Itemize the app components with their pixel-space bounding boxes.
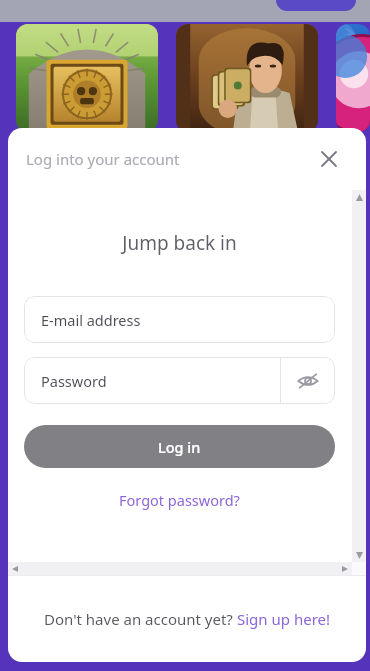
staticText: Jump back in bbox=[122, 230, 237, 256]
staticText: Log in bbox=[158, 437, 201, 457]
button[interactable]: Scroll down bbox=[352, 548, 366, 562]
button[interactable]: Password bbox=[24, 357, 280, 404]
staticText: Forgot password? bbox=[119, 490, 240, 510]
button[interactable]: Scroll left bbox=[8, 562, 22, 575]
staticText: Log into your account bbox=[26, 149, 180, 169]
staticText: Don't have an account yet? bbox=[44, 609, 237, 629]
button[interactable]: E-mail address bbox=[24, 296, 335, 343]
button[interactable]: Scroll right bbox=[338, 562, 352, 575]
button[interactable]: Forgot password? bbox=[113, 487, 246, 513]
button[interactable]: Log in bbox=[24, 425, 335, 468]
button[interactable]: Scroll up bbox=[352, 190, 366, 204]
button[interactable]: Show password bbox=[281, 357, 335, 404]
button[interactable]: Don't have an account yet? bbox=[36, 603, 339, 635]
staticText: E-mail address bbox=[41, 310, 141, 330]
staticText: Password bbox=[41, 371, 107, 391]
staticText: Sign up here! bbox=[237, 609, 331, 629]
button[interactable]: Close bbox=[312, 142, 346, 176]
